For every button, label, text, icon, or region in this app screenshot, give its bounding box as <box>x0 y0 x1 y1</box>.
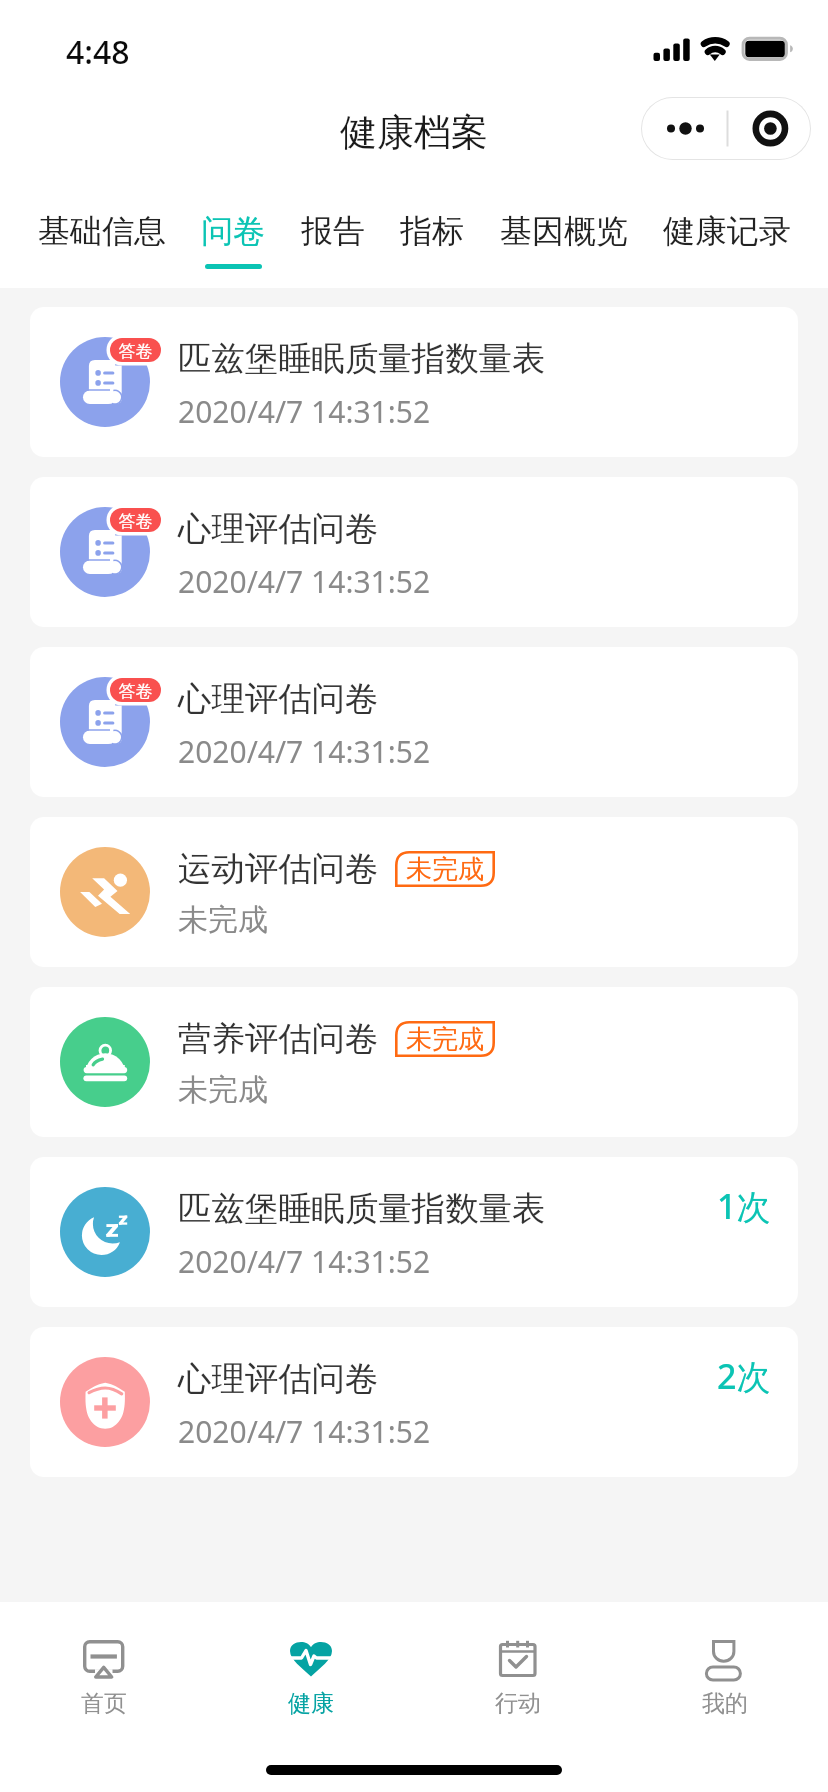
button[interactable]: 营养评估问卷 <box>30 987 798 1137</box>
button[interactable]: 健康记录 <box>663 211 791 251</box>
staticText: 2020/4/7 14:31:52 <box>178 731 431 772</box>
button[interactable]: 首页 <box>0 1602 207 1722</box>
staticText: 问卷 <box>201 211 265 251</box>
staticText: 心理评估问卷 <box>178 1358 379 1400</box>
staticText: 心理评估问卷 <box>178 508 379 550</box>
staticText: 1次 <box>717 1183 771 1229</box>
staticText: 健康档案 <box>340 109 488 156</box>
button[interactable]: 行动 <box>414 1602 621 1722</box>
button[interactable]: 指标 <box>400 211 464 251</box>
staticText: 我的 <box>702 1689 748 1718</box>
staticText: 2020/4/7 14:31:52 <box>178 1241 431 1282</box>
button[interactable]: 运动评估问卷 <box>30 817 798 967</box>
staticText: 指标 <box>400 211 464 251</box>
staticText: 答卷 <box>110 341 161 362</box>
staticText: 基础信息 <box>38 211 166 251</box>
staticText: 2020/4/7 14:31:52 <box>178 391 431 432</box>
staticText: 首页 <box>81 1689 127 1718</box>
staticText: 营养评估问卷 <box>178 1018 379 1060</box>
staticText: 答卷 <box>110 511 161 532</box>
staticText: 匹兹堡睡眠质量指数量表 <box>178 338 546 380</box>
button[interactable]: 心理评估问卷 <box>30 1327 798 1477</box>
staticText: 基因概览 <box>500 211 628 251</box>
staticText: 运动评估问卷 <box>178 848 379 890</box>
button[interactable]: 问卷 <box>201 211 265 269</box>
staticText: 4:48 <box>66 30 130 74</box>
button[interactable]: 健康 <box>207 1602 414 1722</box>
button[interactable]: 我的 <box>621 1602 828 1722</box>
staticText: 心理评估问卷 <box>178 678 379 720</box>
staticText: 健康 <box>288 1689 334 1718</box>
button[interactable]: 匹兹堡睡眠质量指数量表 <box>30 1157 798 1307</box>
button[interactable]: 答卷 <box>30 477 798 627</box>
staticText: 未完成 <box>406 853 484 886</box>
staticText: 未完成 <box>178 1071 268 1109</box>
button[interactable]: 答卷 <box>30 307 798 457</box>
button[interactable]: 基因概览 <box>500 211 628 251</box>
staticText: 匹兹堡睡眠质量指数量表 <box>178 1188 546 1230</box>
button[interactable]: 报告 <box>301 211 365 251</box>
staticText: 报告 <box>301 211 365 251</box>
staticText: 2020/4/7 14:31:52 <box>178 1411 431 1452</box>
staticText: 2020/4/7 14:31:52 <box>178 561 431 602</box>
staticText: 行动 <box>495 1689 541 1718</box>
staticText: 未完成 <box>178 901 268 939</box>
staticText: 未完成 <box>406 1023 484 1056</box>
button[interactable]: 基础信息 <box>38 211 166 251</box>
button[interactable]: 答卷 <box>30 647 798 797</box>
staticText: 2次 <box>717 1353 771 1399</box>
button[interactable]: More options and close <box>641 97 811 160</box>
staticText: 健康记录 <box>663 211 791 251</box>
staticText: 答卷 <box>110 681 161 702</box>
